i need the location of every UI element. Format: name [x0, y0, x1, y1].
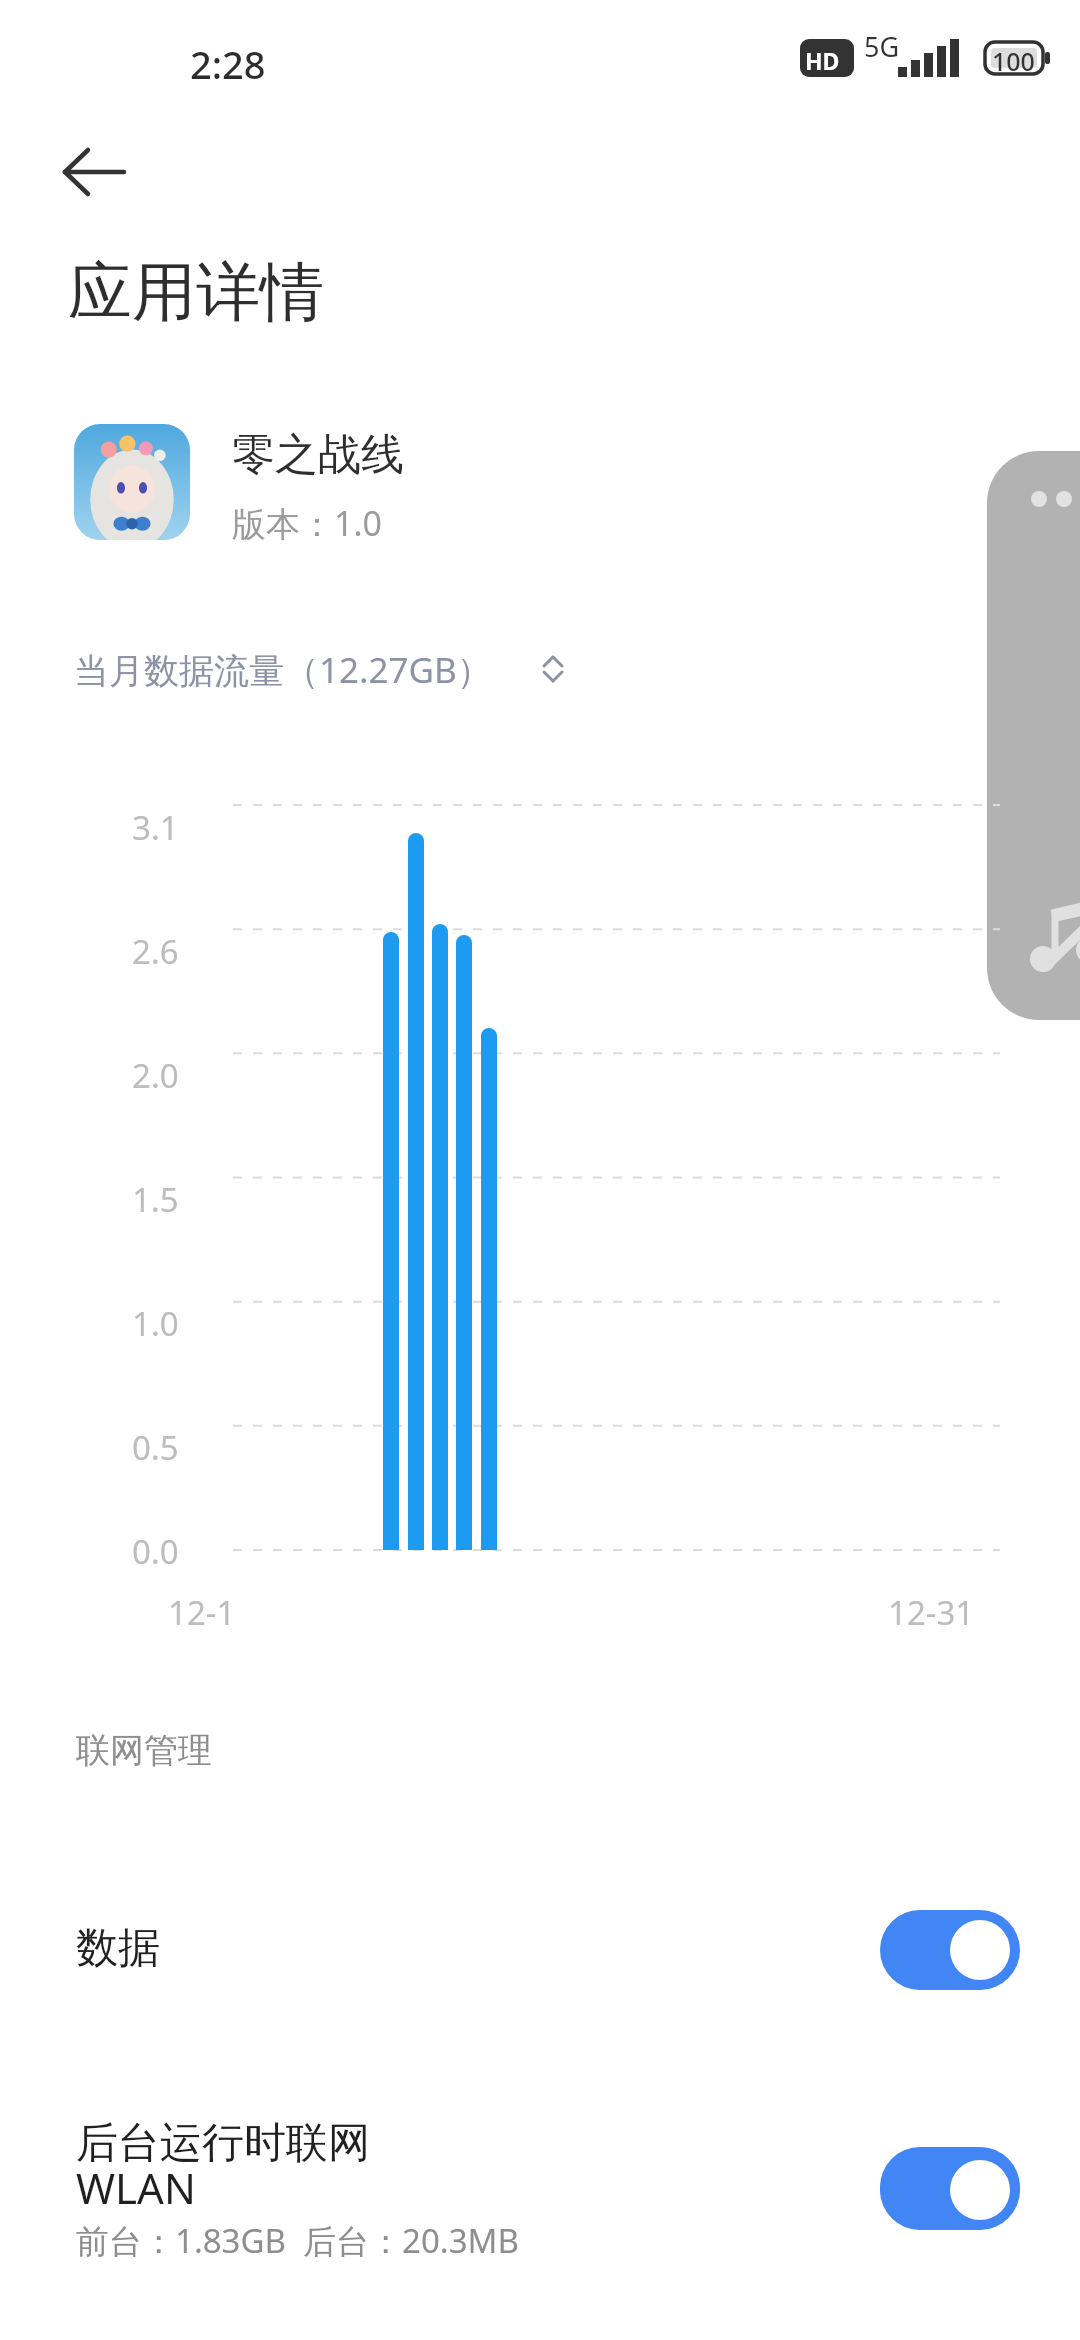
button[interactable]: WLAN — [0, 2115, 1080, 2259]
staticText: 0.5 — [132, 1425, 179, 1470]
staticText: 3.1 — [132, 805, 179, 850]
staticText: 100 — [992, 44, 1035, 78]
staticText: 5G — [864, 28, 900, 65]
staticText: 数据 — [76, 1922, 160, 1975]
staticText: 后台运行时联网 — [76, 2117, 370, 2170]
staticText: 1.5 — [132, 1177, 179, 1222]
staticText: 当月数据流量（12.27GB） — [74, 646, 492, 694]
button[interactable]: 当月数据流量（12.27GB） — [66, 630, 566, 708]
staticText: 应用详情 — [68, 252, 324, 333]
staticText: 12-1 — [168, 1590, 236, 1635]
staticText: 联网管理 — [76, 1729, 212, 1772]
button[interactable]: 后台运行时联网 — [0, 2118, 1080, 2262]
staticText: 前台：1.83GB 后台：20.3MB — [76, 2218, 519, 2263]
staticText: HD — [805, 45, 840, 76]
staticText: 2.0 — [132, 1053, 179, 1098]
staticText: 2.6 — [132, 929, 179, 974]
button[interactable]: Floating window — [987, 451, 1080, 1020]
staticText: 1.0 — [132, 1301, 179, 1346]
button[interactable]: WLAN toggle, on — [880, 2147, 1020, 2227]
button[interactable]: 数据 — [0, 1878, 1080, 2022]
staticText: 版本：1.0 — [232, 500, 383, 546]
staticText: 2:28 — [190, 38, 266, 90]
button[interactable]: 数据 toggle, on — [880, 1910, 1020, 1990]
button[interactable]: 后台运行时联网 toggle, on — [880, 2150, 1020, 2230]
staticText: 0.0 — [132, 1529, 179, 1574]
staticText: 12-31 — [888, 1590, 975, 1635]
staticText: 零之战线 — [232, 428, 404, 482]
staticText: WLAN — [76, 2159, 196, 2216]
button[interactable]: Back — [52, 132, 148, 228]
